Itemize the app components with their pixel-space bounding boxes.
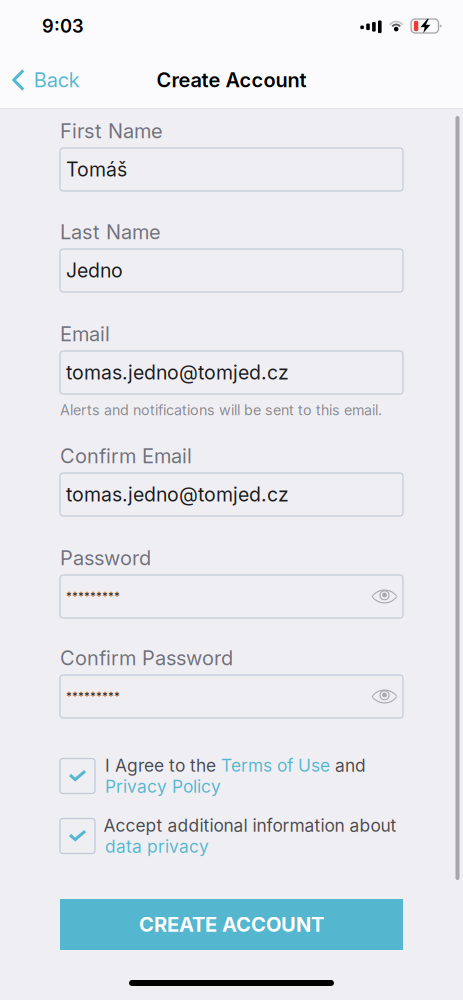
button[interactable]: Show password [371, 589, 397, 603]
staticText: Email [60, 322, 110, 346]
staticText: Confirm Password [60, 646, 233, 670]
button[interactable]: Back [0, 52, 96, 108]
staticText: Create Account [156, 68, 306, 92]
button[interactable]: CREATE ACCOUNT [60, 899, 403, 950]
staticText: ********* [66, 589, 120, 604]
staticText: tomas.jedno@tomjed.cz [66, 361, 289, 384]
staticText: 9:03 [42, 15, 84, 37]
staticText: Accept additional information about [103, 815, 396, 836]
button[interactable]: Accept additional information about [60, 815, 403, 857]
staticText: data privacy [105, 836, 209, 857]
staticText: Password [60, 546, 151, 570]
staticText: CREATE ACCOUNT [139, 912, 324, 937]
staticText: Jedno [66, 259, 123, 282]
button[interactable]: Show password [371, 689, 397, 703]
staticText: Confirm Email [60, 444, 192, 468]
staticText: Alerts and notifications will be sent to… [60, 401, 382, 419]
staticText: Tomáš [66, 158, 127, 181]
staticText: Last Name [60, 220, 161, 244]
staticText: ********* [66, 689, 120, 704]
staticText: tomas.jedno@tomjed.cz [66, 483, 289, 506]
staticText: I Agree to the [105, 755, 221, 776]
staticText: Back [34, 68, 80, 92]
staticText: Terms of Use [221, 755, 330, 776]
staticText: Privacy Policy [105, 776, 221, 797]
button[interactable]: I Agree to the [60, 755, 403, 797]
staticText: First Name [60, 119, 163, 143]
staticText: and [330, 755, 366, 776]
